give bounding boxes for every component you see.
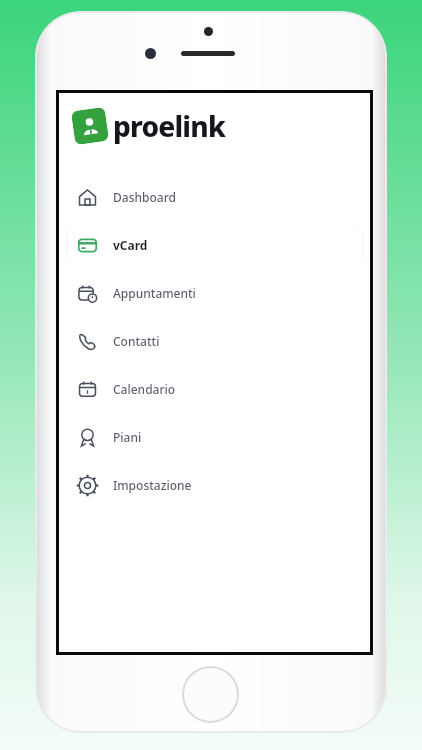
staticText: Impostazione — [113, 477, 192, 493]
button[interactable]: Dashboard — [67, 177, 362, 217]
button[interactable]: Impostazione — [67, 465, 362, 505]
staticText: proelink — [113, 107, 225, 145]
staticText: Appuntamenti — [113, 285, 196, 301]
button[interactable]: vCard — [67, 225, 362, 265]
staticText: vCard — [113, 237, 148, 253]
button[interactable]: Appuntamenti — [67, 273, 362, 313]
staticText: Calendario — [113, 381, 176, 397]
staticText: Dashboard — [113, 189, 176, 205]
button[interactable]: Calendario — [67, 369, 362, 409]
staticText: Contatti — [113, 333, 160, 349]
button[interactable]: Piani — [67, 417, 362, 457]
button[interactable]: Contatti — [67, 321, 362, 361]
staticText: Piani — [113, 429, 142, 445]
